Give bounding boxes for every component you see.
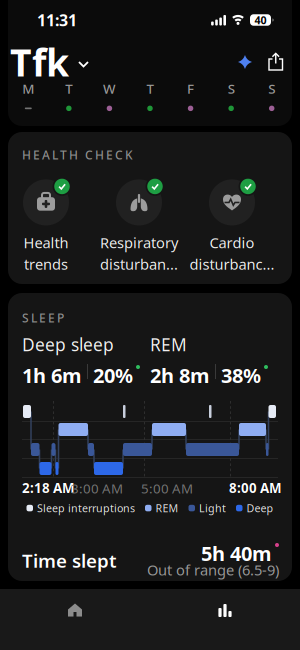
staticText: 20% <box>93 362 133 389</box>
staticText: Cardio <box>209 233 254 252</box>
staticText: F <box>187 80 194 97</box>
button[interactable]: Share <box>265 49 287 74</box>
button[interactable]: Day T <box>130 80 170 112</box>
button[interactable]: Day F <box>170 80 211 112</box>
button[interactable]: Stats <box>150 589 300 650</box>
staticText: HEALTH CHECK <box>22 147 133 163</box>
staticText: 2:18 AM <box>22 479 75 497</box>
staticText: Tfk <box>10 37 69 87</box>
button[interactable]: Day S <box>211 80 251 112</box>
button[interactable]: Respiratory <box>100 178 178 274</box>
staticText: disturban... <box>100 254 178 274</box>
staticText: T <box>65 80 72 97</box>
staticText: 11:31 <box>37 9 77 31</box>
staticText: Light <box>199 501 226 515</box>
staticText: Time slept <box>22 548 117 573</box>
staticText: 5h 40m <box>201 540 272 567</box>
staticText: SLEEP <box>22 310 64 326</box>
staticText: 8:00 AM <box>229 479 282 497</box>
staticText: 40 <box>254 13 266 27</box>
staticText: W <box>103 80 116 97</box>
staticText: 38% <box>221 362 261 389</box>
staticText: REM <box>155 501 178 515</box>
staticText: Health <box>23 233 68 252</box>
staticText: REM <box>150 333 187 356</box>
button[interactable]: Day S <box>251 80 292 112</box>
staticText: T <box>146 80 153 97</box>
button[interactable]: Home <box>0 589 150 650</box>
staticText: M <box>22 80 34 97</box>
staticText: Deep <box>246 501 273 515</box>
staticText: Respiratory <box>100 233 178 252</box>
staticText: disturbanc... <box>189 254 274 274</box>
staticText: S <box>228 80 235 97</box>
staticText: 1h 6m <box>22 362 82 389</box>
button[interactable]: Health <box>21 178 71 274</box>
staticText: 3:00 AM <box>71 479 123 497</box>
staticText: Out of range (6.5-9) <box>147 560 279 579</box>
staticText: 5:00 AM <box>141 479 193 497</box>
button[interactable]: Tfk <box>10 37 89 87</box>
staticText: Deep sleep <box>22 333 114 356</box>
staticText: S <box>268 80 275 97</box>
staticText: trends <box>24 254 68 274</box>
button[interactable]: Day M <box>8 80 49 112</box>
button[interactable]: Assistant <box>233 50 257 74</box>
button[interactable]: Day T <box>49 80 89 112</box>
button[interactable]: Cardio <box>189 178 274 274</box>
staticText: 2h 8m <box>150 362 210 389</box>
button[interactable]: Day W <box>89 80 130 112</box>
staticText: Sleep interruptions <box>37 501 135 515</box>
